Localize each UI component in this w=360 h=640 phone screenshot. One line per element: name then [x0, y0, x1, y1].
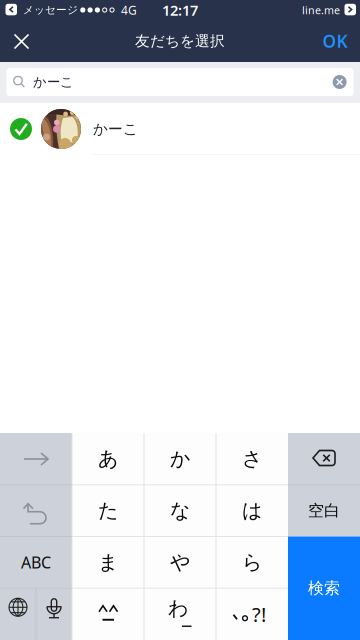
button[interactable]: OK: [310, 20, 360, 62]
button[interactable]: かーこ: [0, 103, 360, 155]
staticText: 4G: [121, 2, 137, 18]
button[interactable]: ABC: [0, 536, 72, 588]
button[interactable]: Punctuation: [216, 588, 288, 640]
button[interactable]: ら: [216, 536, 288, 588]
staticText: メッセージ: [23, 3, 78, 16]
button[interactable]: 空白: [288, 485, 360, 537]
button[interactable]: は: [216, 485, 288, 537]
button[interactable]: や: [144, 536, 216, 588]
button[interactable]: た: [72, 485, 144, 537]
button[interactable]: か: [144, 433, 216, 485]
button[interactable]: Undo: [0, 485, 72, 537]
staticText: た: [98, 498, 118, 523]
button[interactable]: Switch keyboard: [0, 588, 36, 640]
staticText: か: [170, 447, 190, 471]
button[interactable]: 検索: [288, 536, 360, 640]
button[interactable]: さ: [216, 433, 288, 485]
staticText: は: [242, 498, 262, 523]
button[interactable]: Clear text: [331, 73, 349, 91]
staticText: 友だちを選択: [135, 32, 225, 50]
staticText: ら: [242, 550, 262, 575]
staticText: 12:17: [162, 0, 198, 20]
button[interactable]: わ: [144, 588, 216, 640]
button[interactable]: Emoticons: [72, 588, 144, 640]
staticText: かーこ: [33, 74, 74, 90]
staticText: な: [170, 498, 190, 523]
staticText: ま: [98, 550, 118, 575]
staticText: かーこ: [93, 120, 138, 138]
staticText: ABC: [21, 552, 51, 573]
button[interactable]: ま: [72, 536, 144, 588]
staticText: や: [170, 550, 190, 575]
button[interactable]: な: [144, 485, 216, 537]
staticText: 検索: [308, 578, 340, 598]
staticText: あ: [98, 447, 118, 471]
staticText: line.me: [302, 3, 340, 17]
button[interactable]: Dictation: [36, 588, 72, 640]
button[interactable]: Delete: [288, 433, 360, 485]
button[interactable]: Next candidate: [0, 433, 72, 485]
staticText: ?!: [252, 601, 266, 627]
staticText: OK: [322, 29, 347, 52]
button[interactable]: Close: [0, 20, 44, 62]
staticText: さ: [242, 447, 262, 471]
staticText: 空白: [308, 501, 340, 520]
staticText: わ: [168, 596, 188, 621]
button[interactable]: あ: [72, 433, 144, 485]
